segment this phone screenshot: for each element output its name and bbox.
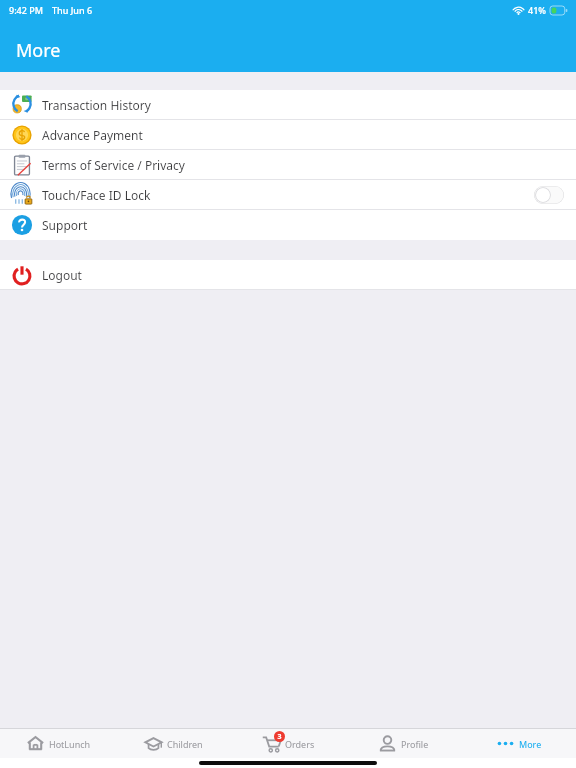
staticText: Children bbox=[167, 738, 203, 750]
staticText: Advance Payment bbox=[42, 127, 143, 143]
staticText: Profile bbox=[401, 738, 429, 750]
staticText: HotLunch bbox=[49, 738, 91, 750]
button[interactable]: Touch/Face ID Lock bbox=[0, 180, 576, 210]
staticText: Support bbox=[42, 217, 88, 233]
staticText: More bbox=[16, 38, 61, 63]
staticText: 3 bbox=[277, 732, 282, 742]
button[interactable]: Profile bbox=[346, 729, 461, 758]
button[interactable]: Touch/Face ID Lock toggle bbox=[534, 186, 564, 204]
staticText: Touch/Face ID Lock bbox=[42, 187, 151, 203]
staticText: Thu Jun 6 bbox=[52, 4, 93, 16]
staticText: More bbox=[519, 738, 542, 750]
button[interactable]: Children bbox=[116, 729, 231, 758]
button[interactable]: Terms of Service / Privacy bbox=[0, 150, 576, 180]
staticText: 41% bbox=[528, 4, 546, 16]
staticText: Transaction History bbox=[42, 97, 151, 113]
staticText: Terms of Service / Privacy bbox=[42, 157, 185, 173]
button[interactable]: HotLunch bbox=[0, 729, 116, 758]
staticText: Orders bbox=[285, 738, 315, 750]
button[interactable]: Transaction History bbox=[0, 90, 576, 120]
staticText: 9:42 PM bbox=[9, 4, 43, 16]
staticText: Logout bbox=[42, 267, 82, 283]
button[interactable]: 3 bbox=[231, 729, 346, 758]
button[interactable]: Advance Payment bbox=[0, 120, 576, 150]
button[interactable]: Logout bbox=[0, 260, 576, 290]
button[interactable]: Support bbox=[0, 210, 576, 240]
button[interactable]: More bbox=[461, 729, 576, 758]
